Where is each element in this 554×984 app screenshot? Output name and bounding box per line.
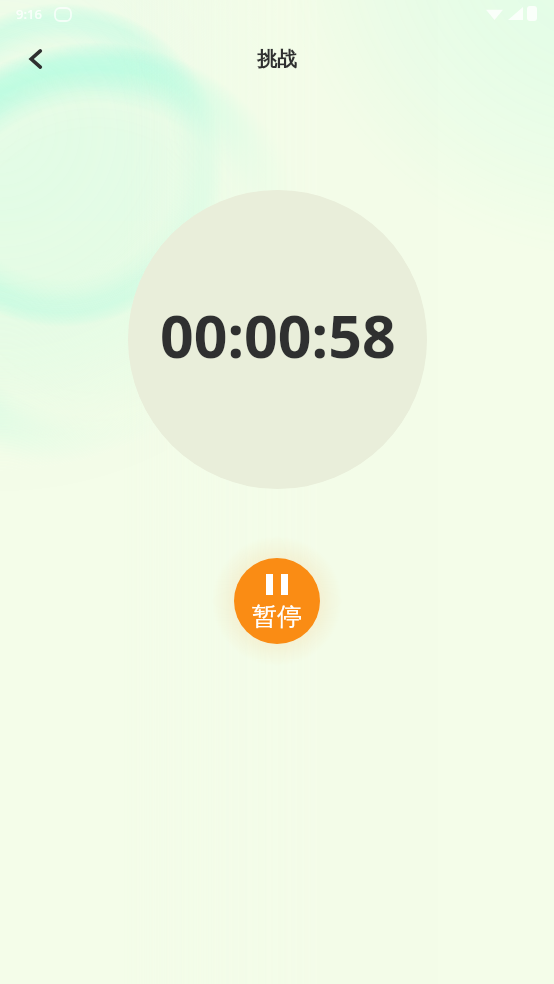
staticText: 00:00:58 (160, 295, 396, 375)
button[interactable]: 暂停 (234, 558, 320, 644)
staticText: 暂停 (252, 601, 302, 632)
button[interactable]: Back (12, 35, 60, 83)
staticText: 9:16 (16, 5, 42, 23)
staticText: 挑战 (257, 47, 297, 72)
